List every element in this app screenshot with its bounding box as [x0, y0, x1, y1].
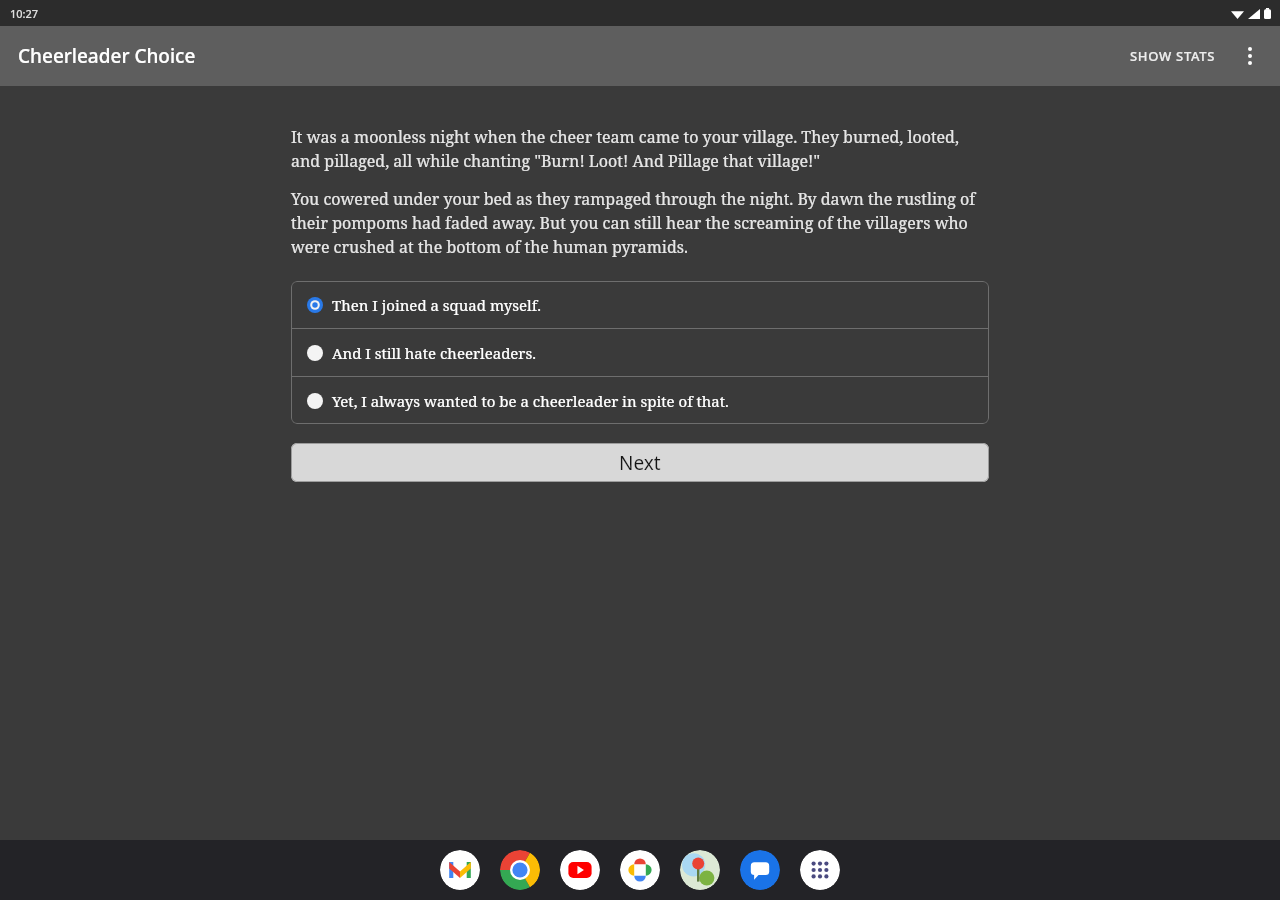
button[interactable]: YouTube	[560, 850, 600, 890]
button[interactable]: Maps	[680, 850, 720, 890]
button[interactable]: Chrome	[500, 850, 540, 890]
staticText: 10:27	[10, 6, 39, 21]
staticText: It was a moonless night when the cheer t…	[291, 126, 989, 172]
staticText: SHOW STATS	[1130, 47, 1216, 65]
button[interactable]: Then I joined a squad myself.	[291, 281, 989, 328]
staticText: Then I joined a squad myself.	[332, 295, 541, 315]
staticText: Yet, I always wanted to be a cheerleader…	[332, 391, 729, 411]
button[interactable]: SHOW STATS	[1118, 31, 1228, 81]
button[interactable]: More options	[1228, 34, 1272, 78]
button[interactable]: And I still hate cheerleaders.	[291, 329, 989, 376]
button[interactable]: Yet, I always wanted to be a cheerleader…	[291, 377, 989, 424]
staticText: Next	[619, 450, 661, 476]
button[interactable]: Messages	[740, 850, 780, 890]
button[interactable]: Photos	[620, 850, 660, 890]
staticText: Cheerleader Choice	[18, 43, 196, 69]
staticText: And I still hate cheerleaders.	[332, 343, 536, 363]
button[interactable]: All apps	[800, 850, 840, 890]
button[interactable]: Gmail	[440, 850, 480, 890]
button[interactable]: Next	[291, 443, 989, 482]
staticText: You cowered under your bed as they rampa…	[291, 188, 989, 258]
